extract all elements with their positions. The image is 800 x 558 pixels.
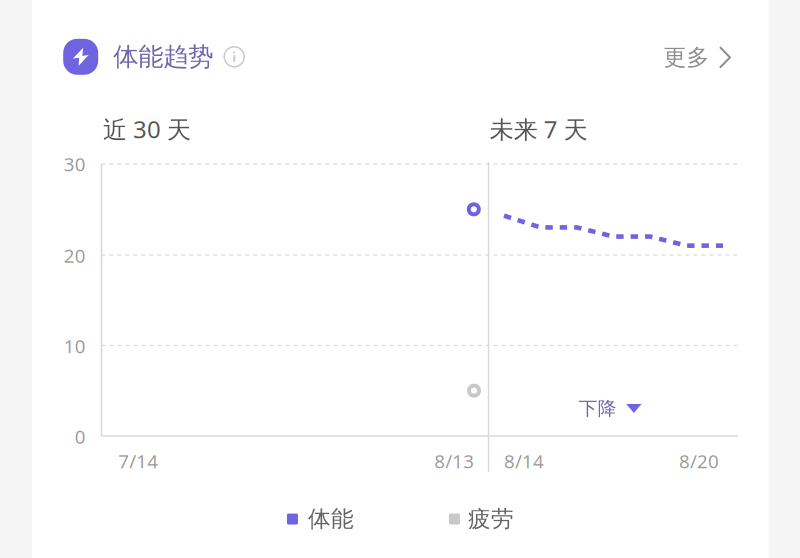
staticText: 0 [75,424,86,449]
staticText: 更多 [663,43,709,71]
staticText: 下降 [579,397,617,420]
button[interactable]: 体能趋势 [63,39,244,75]
staticText: 8/14 [504,449,544,473]
staticText: 8/20 [679,449,719,473]
staticText: 疲劳 [468,505,514,533]
staticText: 7/14 [118,449,158,473]
staticText: 20 [64,243,86,268]
staticText: 未来 7 天 [490,113,588,145]
staticText: 30 [64,152,86,176]
button[interactable]: 更多 [663,43,730,71]
staticText: 近 30 天 [103,113,191,145]
staticText: 体能趋势 [113,41,213,72]
staticText: 体能 [308,505,354,533]
staticText: 8/13 [434,449,474,473]
staticText: 10 [64,334,86,358]
